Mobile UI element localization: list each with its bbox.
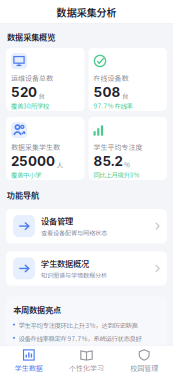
- staticText: 覆盖中小学: [11, 170, 41, 179]
- staticText: 520: [11, 84, 37, 100]
- staticText: 学生平均专注度: [93, 142, 142, 152]
- staticText: 个性化学习: [69, 363, 104, 373]
- staticText: 功能导航: [7, 189, 39, 201]
- staticText: 508: [93, 84, 120, 100]
- staticText: 本周数据亮点: [13, 304, 61, 316]
- staticText: 覆盖30所学校: [11, 101, 49, 110]
- staticText: 知识图谱与学情数据分析: [41, 271, 107, 280]
- button[interactable]: 学生数据: [0, 345, 58, 378]
- staticText: 85.2: [93, 153, 122, 169]
- button[interactable]: 学生数据概况: [6, 251, 167, 286]
- staticText: %: [124, 160, 130, 169]
- staticText: 学生数据: [15, 363, 43, 373]
- staticText: 数据采集概览: [7, 31, 55, 43]
- staticText: 人: [56, 160, 62, 169]
- button[interactable]: 设备管理: [6, 209, 167, 243]
- staticText: 同比上月提升3%: [93, 170, 139, 179]
- staticText: 数据采集学生数: [11, 142, 60, 152]
- staticText: 25000: [11, 153, 55, 169]
- staticText: 数据采集分析: [56, 5, 116, 19]
- staticText: 97.7% 在线率: [93, 101, 132, 110]
- staticText: 台: [122, 91, 128, 100]
- staticText: 学生数据概况: [41, 257, 89, 269]
- staticText: 查看设备配置与网络状态: [41, 228, 107, 237]
- staticText: 台: [38, 91, 44, 100]
- staticText: 在线设备数: [93, 73, 128, 83]
- staticText: 学生平均专注度环比上升 3%，达到历史新高: [18, 321, 137, 330]
- button[interactable]: 校园管理: [115, 345, 173, 378]
- staticText: 设备在线率稳定在 97.7%，系统运行状态良好: [18, 334, 141, 343]
- staticText: 校园管理: [130, 363, 158, 373]
- staticText: 设备管理: [41, 215, 73, 227]
- button[interactable]: 个性化学习: [58, 345, 115, 378]
- staticText: 运维设备总数: [11, 73, 53, 83]
